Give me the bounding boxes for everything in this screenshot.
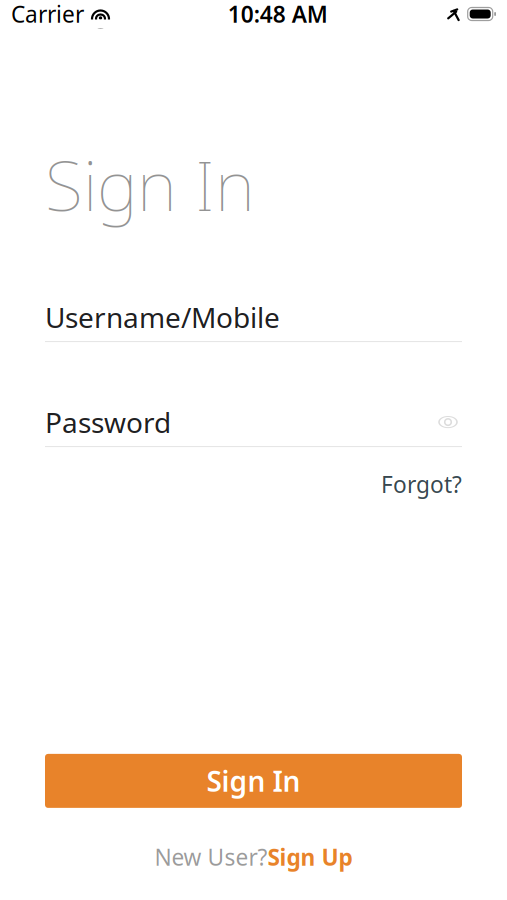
staticText: Password [45, 403, 171, 441]
staticText: Sign In [45, 138, 255, 230]
staticText: Sign In [206, 762, 300, 799]
staticText: Forgot? [381, 469, 462, 499]
button[interactable]: Sign In [45, 754, 462, 808]
button[interactable]: Show password [434, 409, 462, 435]
staticText: Username/Mobile [45, 298, 280, 336]
staticText: Carrier [11, 0, 84, 29]
staticText: New User? [154, 842, 267, 872]
button[interactable]: New User? [154, 838, 352, 876]
staticText: Sign Up [267, 842, 352, 872]
staticText: 10:48 AM [228, 0, 328, 29]
button[interactable]: Forgot? [381, 465, 462, 503]
